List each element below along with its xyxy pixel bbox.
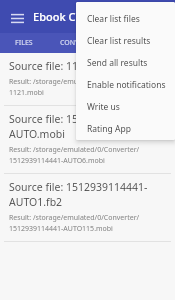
staticText: Result: /storage/emulated/0/Converter/ <box>9 145 140 155</box>
staticText: Result: /storage/emulated/0/Converter/ <box>9 213 140 223</box>
button[interactable]: Enable notifications <box>76 74 175 96</box>
button[interactable]: Source file: 1512939114441- <box>0 106 175 173</box>
staticText: Source file: 1512939114441- <box>9 180 148 194</box>
staticText: FILES <box>15 38 33 48</box>
button[interactable]: Send all results <box>76 52 175 74</box>
staticText: 1512939114441-AUTO115.mobi <box>9 224 113 234</box>
staticText: AUTO.mobi <box>9 127 65 141</box>
staticText: Source file: 1121.fb2 <box>9 59 109 73</box>
button[interactable]: Rating App <box>76 118 175 140</box>
button[interactable]: Clear list files <box>76 8 175 30</box>
staticText: Result: /storage/emulated/0/Converter/ <box>9 77 140 87</box>
button[interactable]: Source file: 1121.fb2 <box>0 53 175 105</box>
staticText: Ebook Converter <box>33 9 121 24</box>
button[interactable]: Source file: 1512939114441- <box>0 174 175 241</box>
staticText: Clear list files <box>87 13 140 25</box>
button[interactable]: Write us <box>76 96 175 118</box>
staticText: 1121.mobi <box>9 88 44 98</box>
staticText: Clear list results <box>87 35 151 47</box>
staticText: Source file: 1512939114441- <box>9 112 148 126</box>
staticText: Write us <box>87 101 120 113</box>
staticText: AUTO1.fb2 <box>9 195 63 209</box>
staticText: 1512939114441-AUTO6.mobi <box>9 156 105 166</box>
staticText: CONVERTING <box>60 38 105 48</box>
staticText: Rating App <box>87 123 131 135</box>
staticText: Send all results <box>87 57 148 69</box>
button[interactable]: Open navigation menu <box>6 6 28 28</box>
button[interactable]: Clear list results <box>76 30 175 52</box>
button[interactable]: CONVERTING <box>48 33 116 53</box>
staticText: Enable notifications <box>87 79 166 91</box>
button[interactable]: FILES <box>0 33 48 53</box>
